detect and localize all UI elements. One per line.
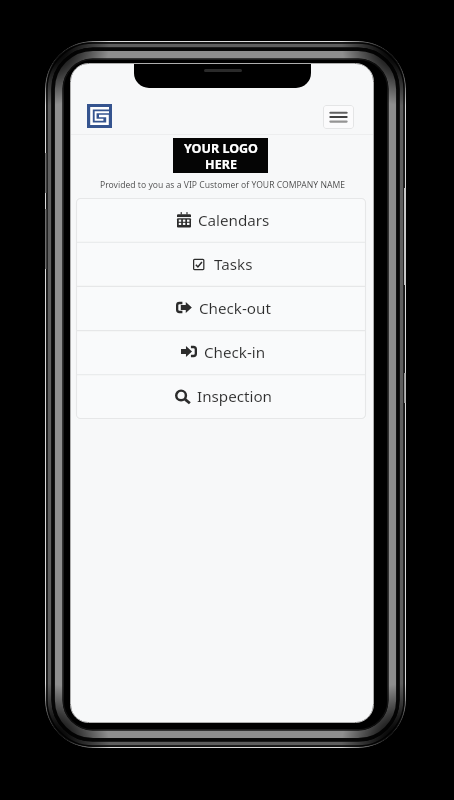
button[interactable]: Inspection: [76, 374, 366, 418]
staticText: Check-out: [199, 298, 271, 319]
button[interactable]: Tasks: [76, 242, 366, 286]
button[interactable]: Calendars: [76, 198, 366, 242]
staticText: Tasks: [214, 254, 253, 275]
staticText: Check-in: [204, 342, 266, 363]
staticText: YOUR LOGO HERE: [184, 140, 258, 172]
button[interactable]: Open navigation menu: [323, 105, 354, 129]
button[interactable]: Company logo, home: [87, 104, 112, 128]
staticText: Provided to you as a VIP Customer of YOU…: [100, 179, 345, 191]
button[interactable]: Check-in: [76, 330, 366, 374]
button[interactable]: Check-out: [76, 286, 366, 330]
staticText: Inspection: [197, 386, 272, 407]
staticText: Calendars: [198, 210, 270, 231]
